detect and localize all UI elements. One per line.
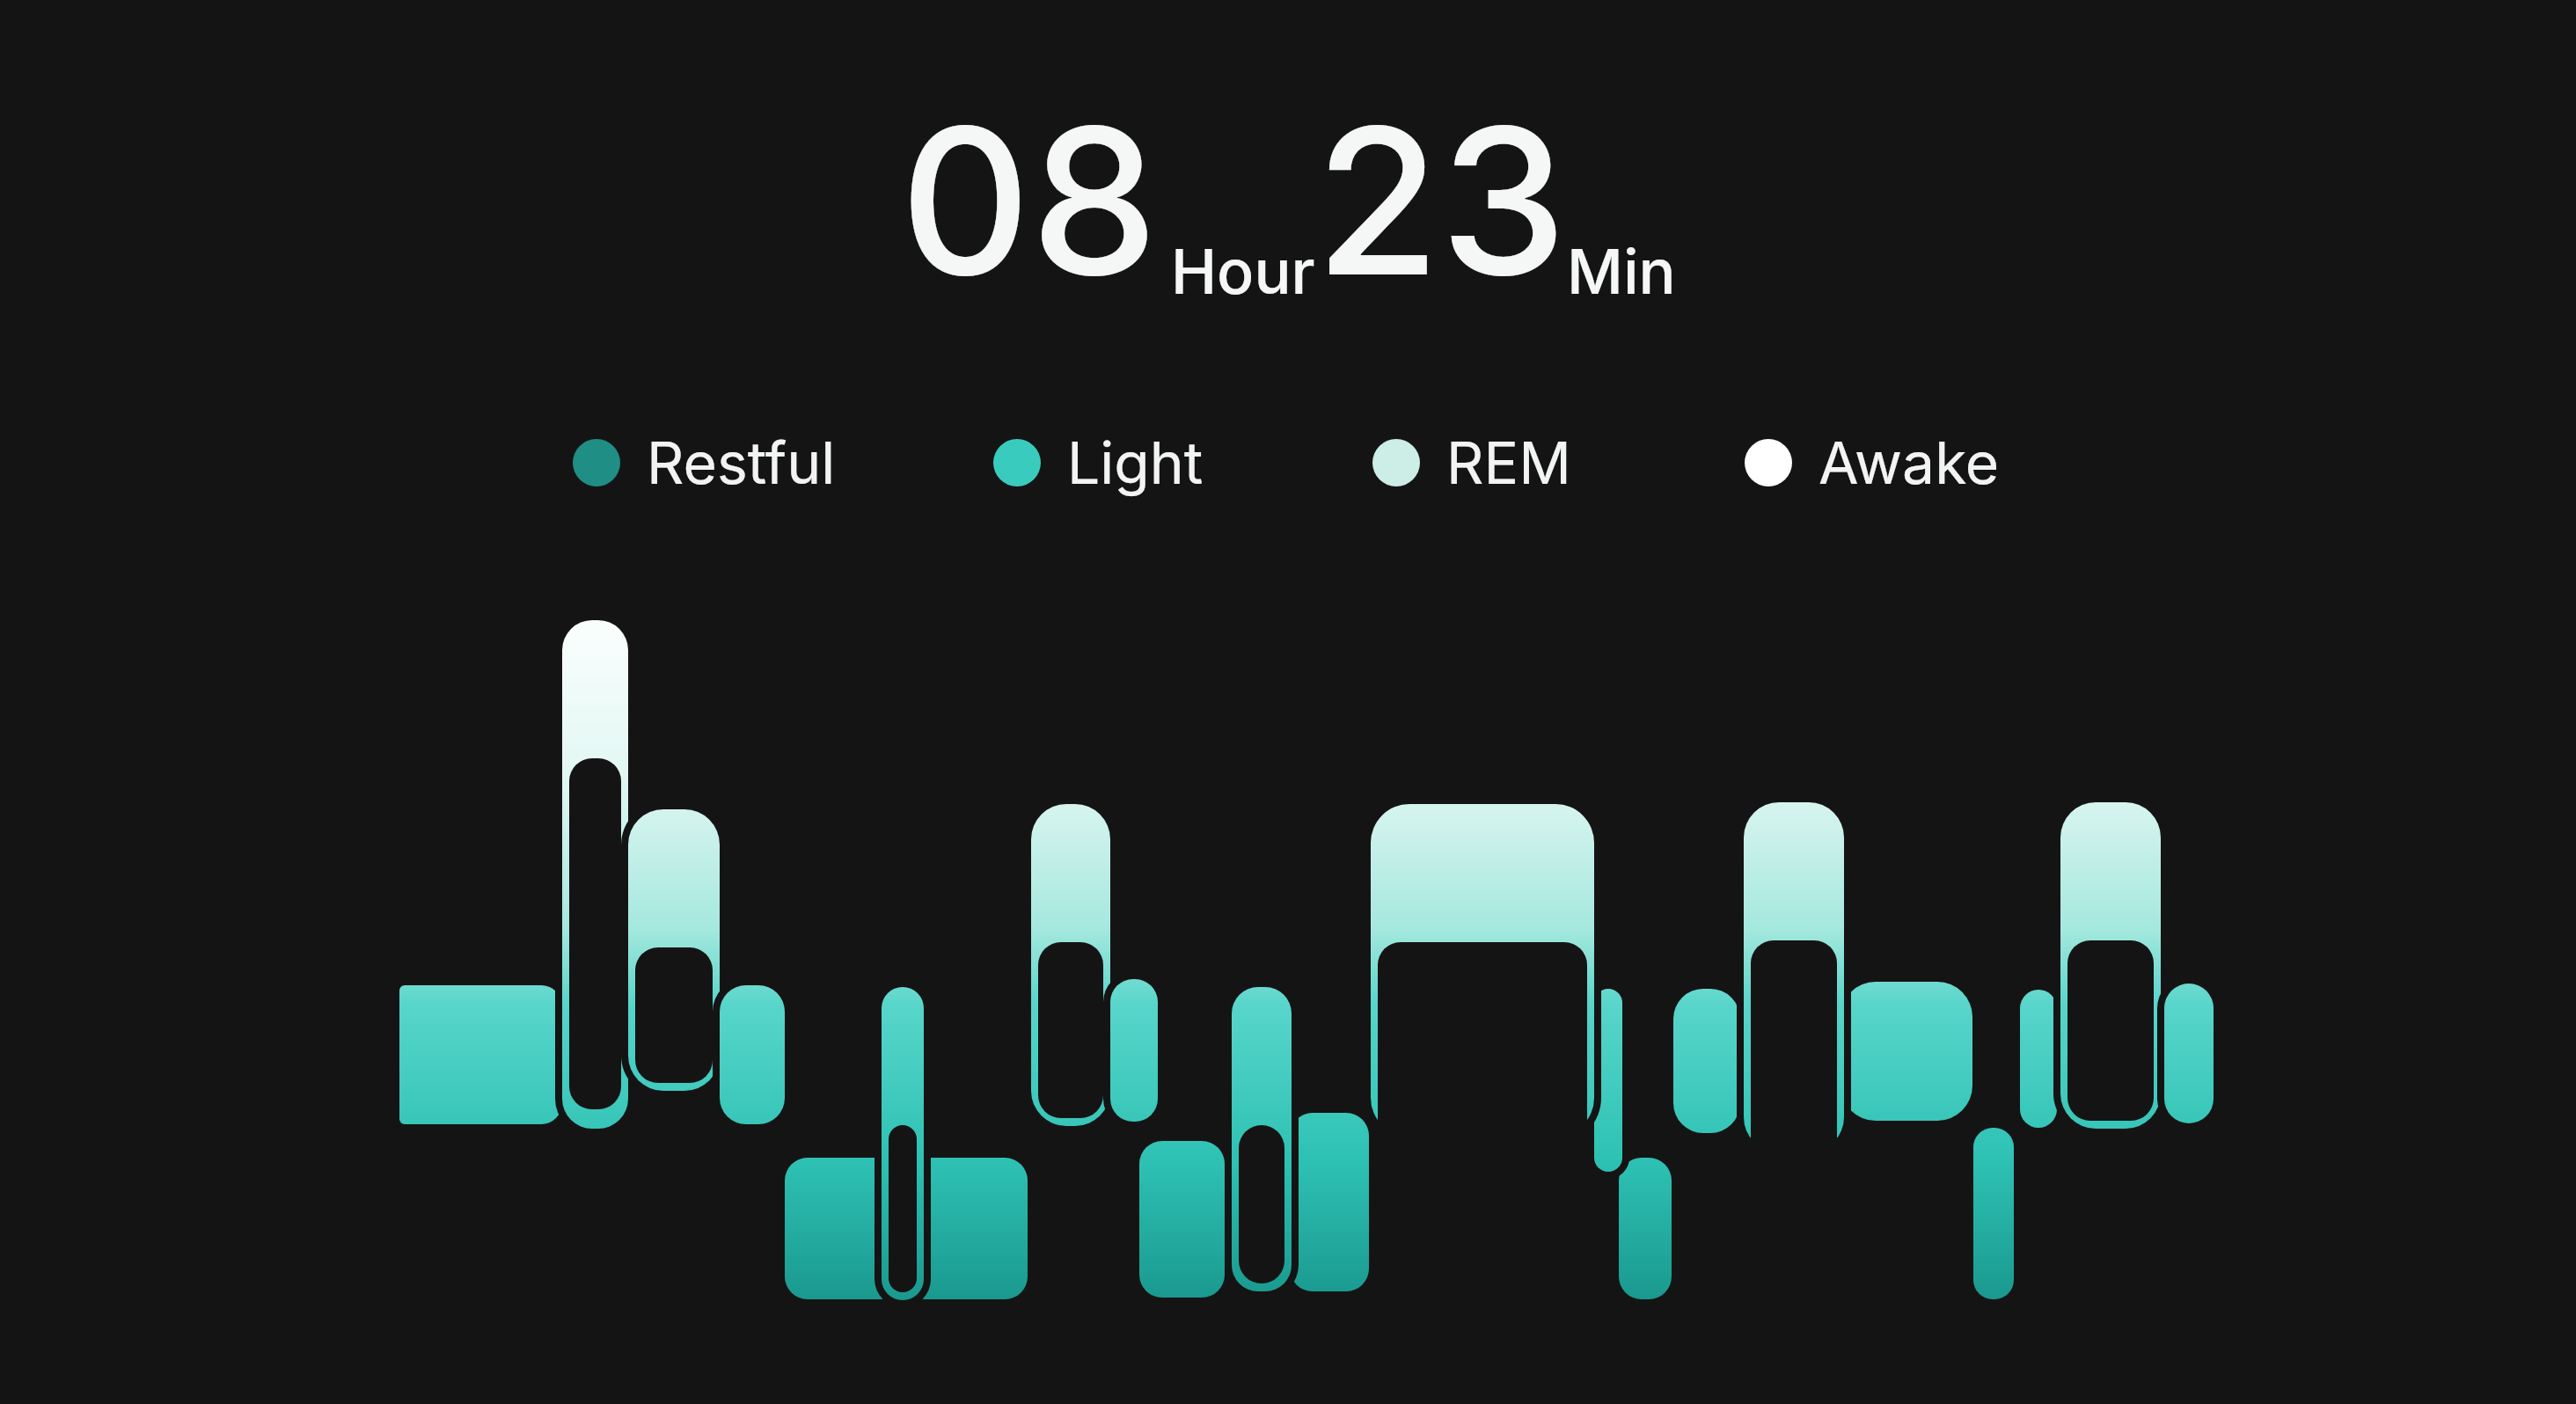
staticText: Light: [1067, 428, 1204, 498]
staticText: Hour: [1171, 234, 1315, 309]
staticText: 08: [900, 78, 1159, 323]
staticText: Restful: [647, 428, 836, 498]
button[interactable]: Awake: [1745, 428, 2000, 498]
staticText: Awake: [1819, 428, 2000, 498]
staticText: 23: [1315, 78, 1567, 323]
button[interactable]: Restful: [573, 428, 836, 498]
button[interactable]: REM: [1372, 428, 1571, 498]
staticText: REM: [1446, 428, 1571, 498]
button[interactable]: Light: [993, 428, 1204, 498]
staticText: Min: [1567, 234, 1676, 309]
